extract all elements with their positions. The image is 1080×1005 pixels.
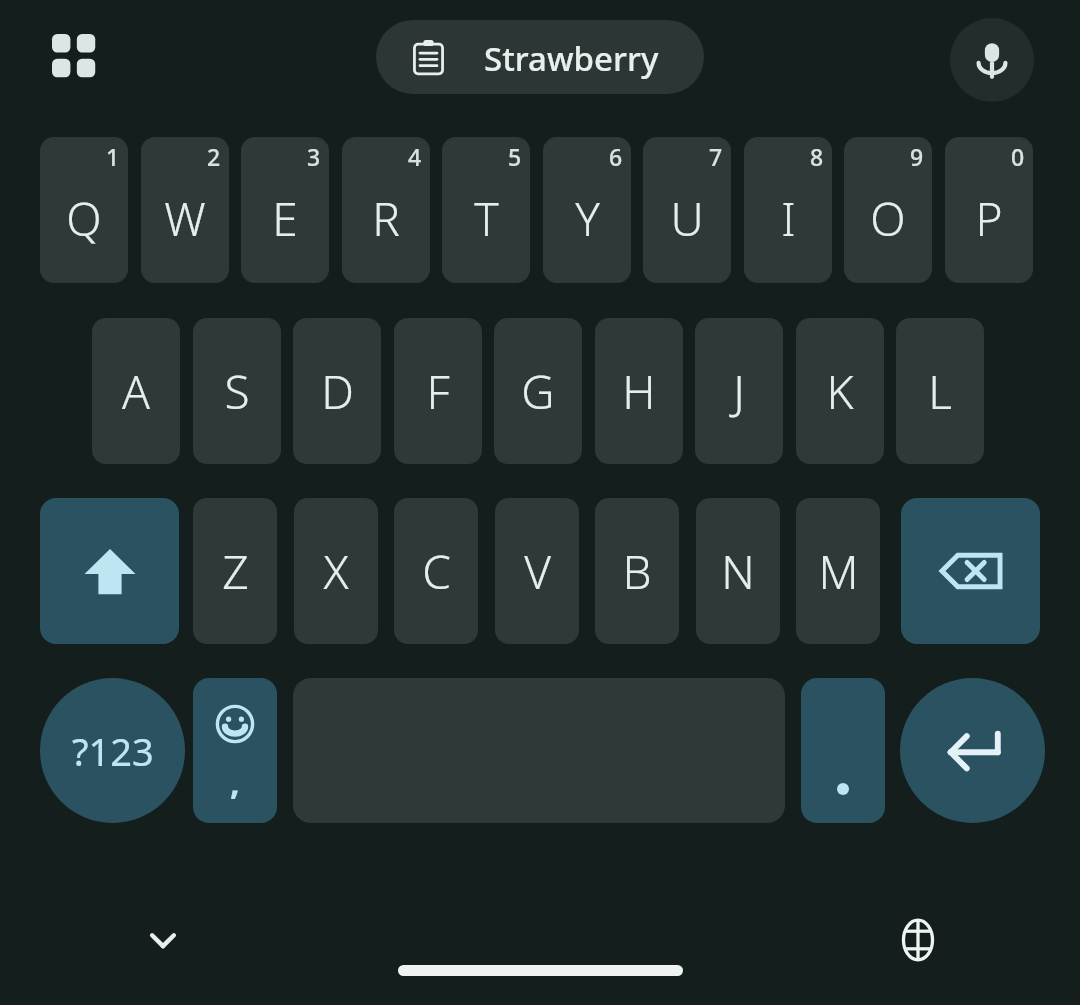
button[interactable]: Period (801, 678, 885, 823)
button[interactable]: 2 (141, 137, 229, 283)
staticText: T (474, 187, 499, 250)
staticText: 1 (106, 141, 120, 172)
button[interactable]: G (494, 318, 582, 464)
button[interactable]: Enter (900, 678, 1045, 823)
button[interactable]: C (394, 498, 478, 644)
staticText: J (733, 360, 745, 423)
staticText: F (426, 360, 450, 423)
button[interactable]: Backspace (901, 498, 1040, 644)
button[interactable]: ?123 (40, 678, 185, 823)
staticText: 4 (408, 141, 422, 172)
staticText: Strawberry (484, 36, 659, 81)
staticText: X (323, 540, 349, 603)
staticText: S (224, 360, 250, 423)
staticText: O (870, 187, 906, 250)
staticText: U (670, 187, 704, 250)
staticText: E (272, 187, 298, 250)
staticText: 2 (207, 141, 221, 172)
button[interactable]: 3 (241, 137, 329, 283)
staticText: 8 (810, 141, 824, 172)
staticText: 6 (609, 141, 623, 172)
button[interactable]: D (293, 318, 381, 464)
button[interactable]: X (294, 498, 378, 644)
button[interactable]: F (394, 318, 482, 464)
button[interactable]: 8 (744, 137, 832, 283)
button[interactable]: B (595, 498, 679, 644)
button[interactable]: 6 (543, 137, 631, 283)
button[interactable]: N (696, 498, 780, 644)
button[interactable]: 4 (342, 137, 430, 283)
button[interactable]: Change language (880, 905, 956, 975)
staticText: C (422, 540, 451, 603)
staticText: L (928, 360, 952, 423)
staticText: V (524, 540, 551, 603)
staticText: G (521, 360, 555, 423)
button[interactable]: M (796, 498, 880, 644)
staticText: H (622, 360, 656, 423)
staticText: 7 (709, 141, 723, 172)
staticText: R (372, 187, 400, 250)
staticText: Z (222, 540, 249, 603)
staticText: 0 (1011, 141, 1025, 172)
button[interactable]: H (595, 318, 683, 464)
staticText: M (818, 540, 859, 603)
staticText: B (622, 540, 652, 603)
staticText: P (975, 187, 1003, 250)
button[interactable]: V (495, 498, 579, 644)
staticText: W (164, 187, 206, 250)
staticText: Y (575, 187, 600, 250)
button[interactable]: J (695, 318, 783, 464)
button[interactable]: 9 (844, 137, 932, 283)
button[interactable]: Hide keyboard (125, 905, 201, 975)
button[interactable]: Voice input (950, 18, 1034, 102)
button[interactable]: Toolbar (44, 26, 106, 88)
button[interactable]: 7 (643, 137, 731, 283)
staticText: 3 (307, 141, 321, 172)
staticText: ?123 (72, 725, 154, 777)
button[interactable]: Shift (40, 498, 179, 644)
staticText: , (230, 759, 240, 805)
staticText: 5 (508, 141, 522, 172)
staticText: A (122, 360, 150, 423)
staticText: K (826, 360, 854, 423)
button[interactable]: 1 (40, 137, 128, 283)
button[interactable]: A (92, 318, 180, 464)
button[interactable]: Emoji and comma (193, 678, 277, 823)
staticText: Q (66, 187, 102, 250)
staticText: 9 (910, 141, 924, 172)
staticText: D (321, 360, 354, 423)
button[interactable]: Z (193, 498, 277, 644)
button[interactable]: 0 (945, 137, 1033, 283)
button[interactable]: L (896, 318, 984, 464)
button[interactable]: S (193, 318, 281, 464)
button[interactable]: Strawberry (376, 20, 704, 94)
button[interactable]: K (796, 318, 884, 464)
staticText: N (721, 540, 755, 603)
staticText: I (781, 187, 796, 250)
button[interactable]: 5 (442, 137, 530, 283)
